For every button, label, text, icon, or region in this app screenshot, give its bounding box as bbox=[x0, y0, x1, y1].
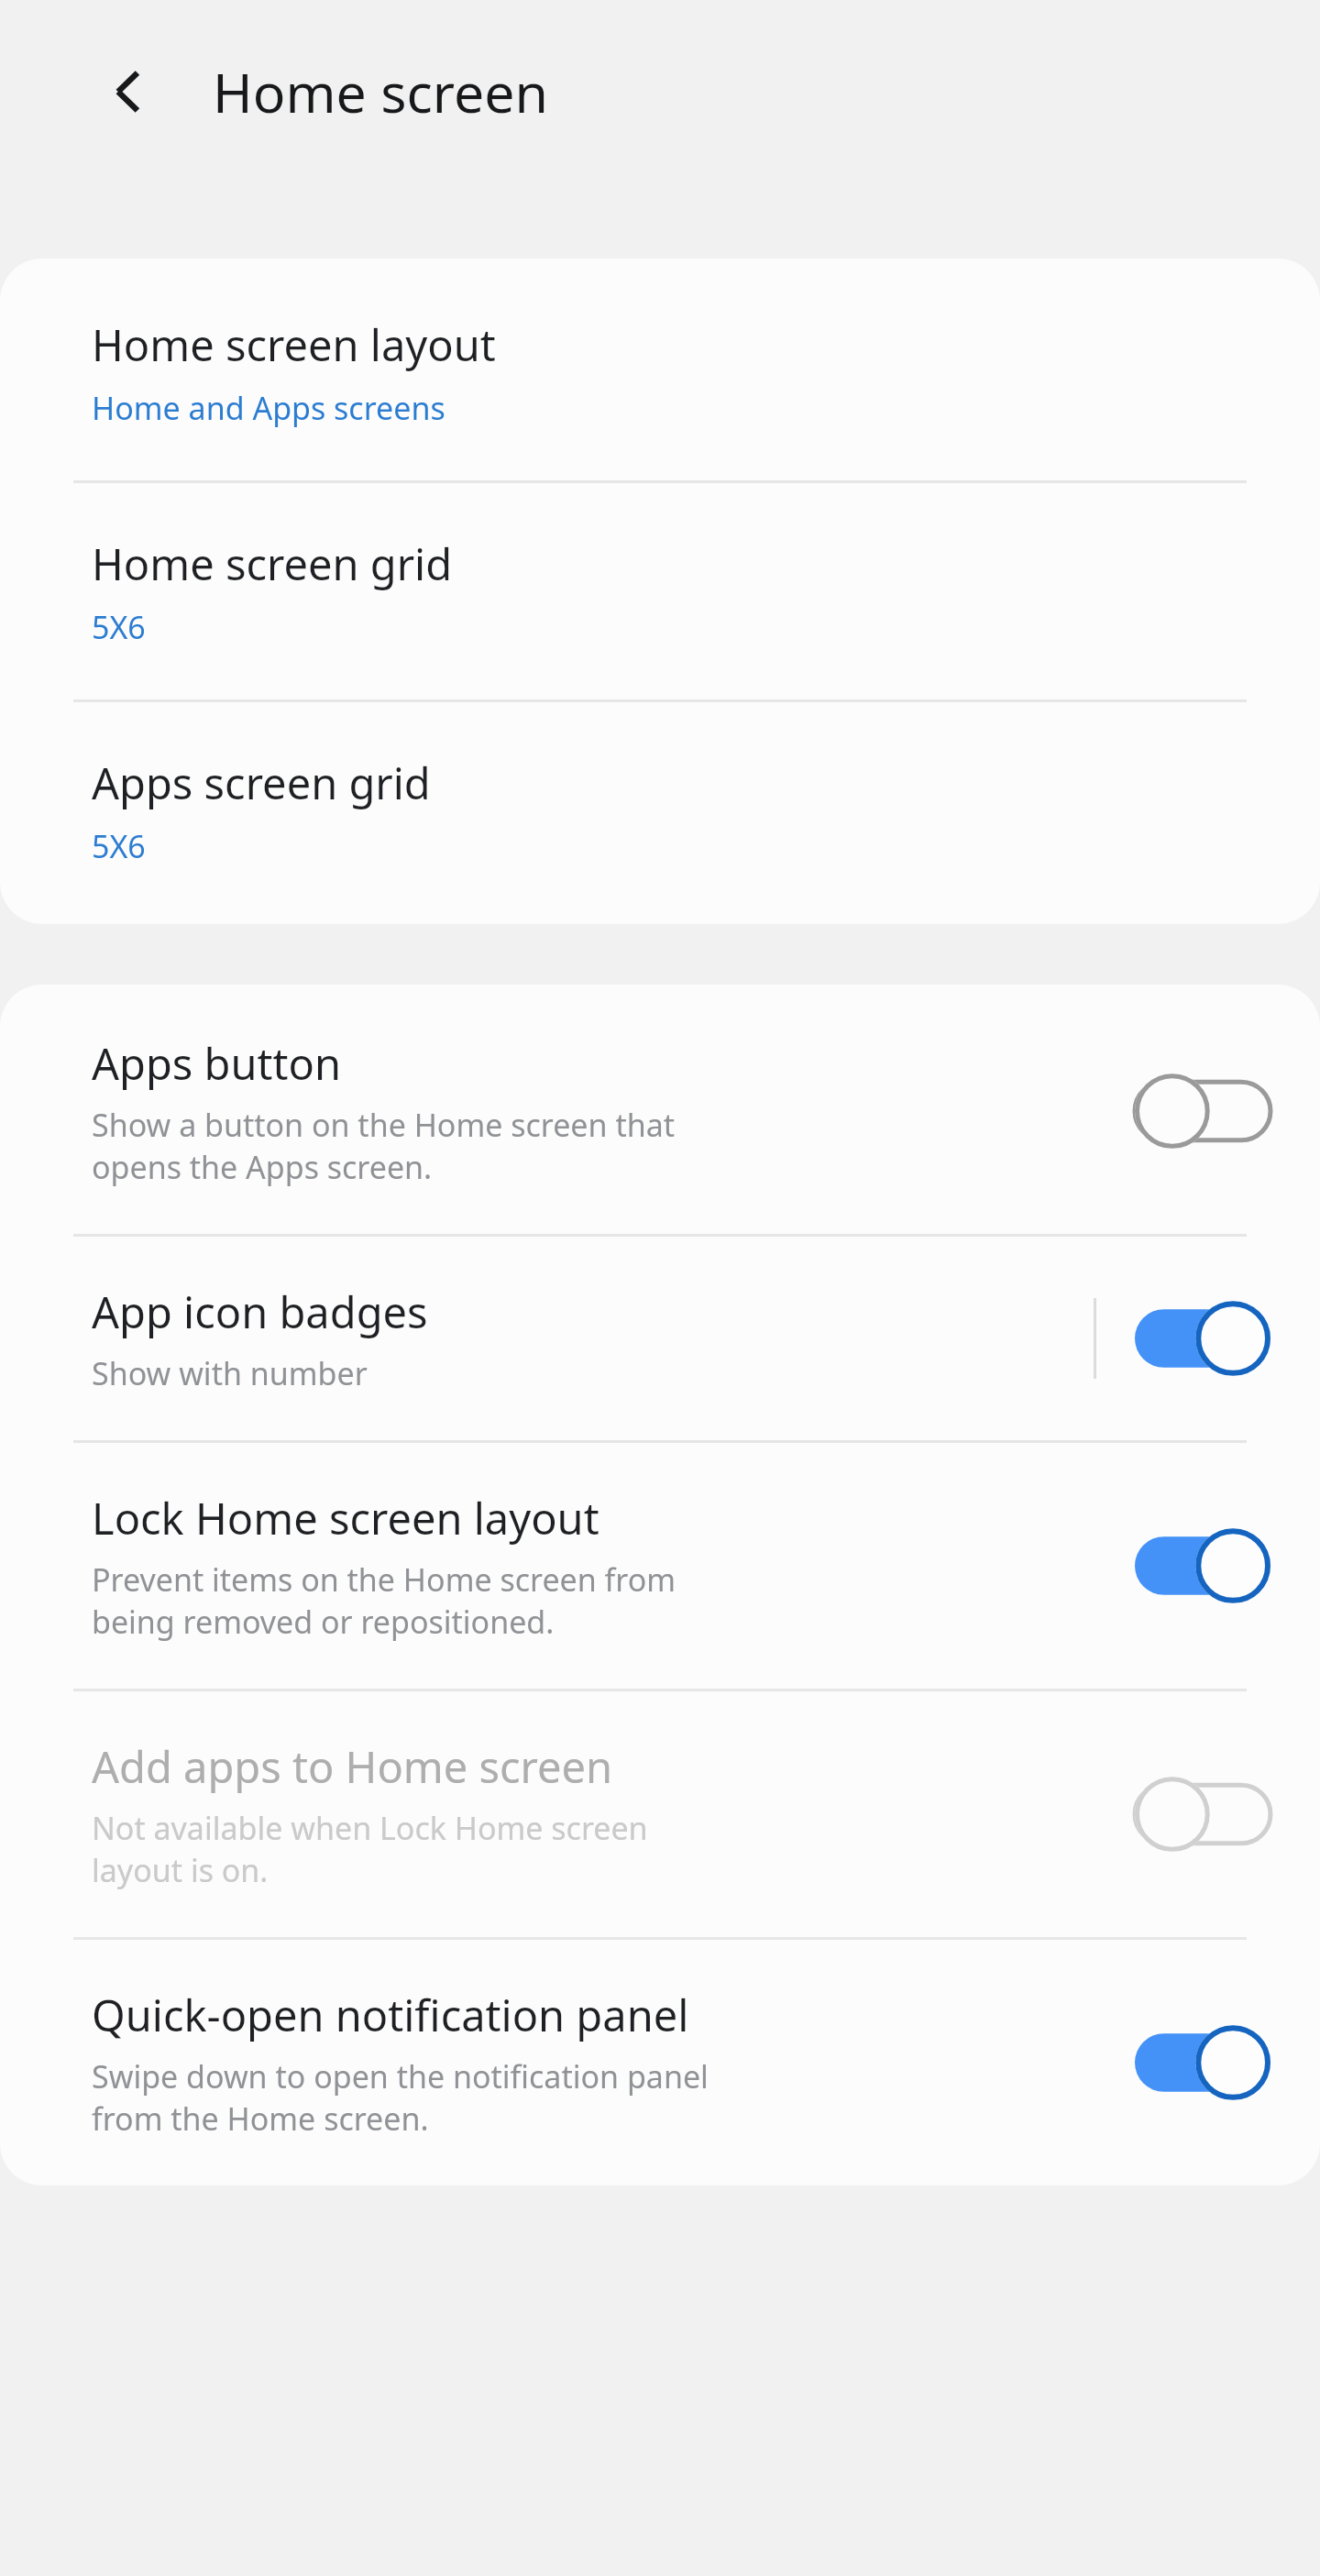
button[interactable]: Toggle on bbox=[1135, 2023, 1270, 2102]
staticText: Home and Apps screens bbox=[92, 387, 445, 429]
staticText: 5X6 bbox=[92, 825, 146, 867]
staticText: Prevent items on the Home screen from be… bbox=[92, 1558, 676, 1643]
button[interactable]: Apps screen grid bbox=[0, 702, 1320, 924]
staticText: Show a button on the Home screen that op… bbox=[92, 1104, 676, 1188]
button[interactable]: Toggle off bbox=[1135, 1072, 1270, 1150]
button[interactable]: Home screen layout bbox=[0, 259, 1320, 480]
staticText: Home screen bbox=[213, 55, 548, 128]
staticText: Apps button bbox=[92, 1034, 341, 1093]
staticText: App icon badges bbox=[92, 1282, 428, 1341]
button: Add apps to Home screen bbox=[0, 1691, 1320, 1937]
button[interactable]: Apps button bbox=[0, 985, 1320, 1234]
staticText: 5X6 bbox=[92, 606, 146, 648]
staticText: Add apps to Home screen bbox=[92, 1737, 613, 1796]
button[interactable]: Toggle on bbox=[1135, 1299, 1270, 1378]
button: Toggle off bbox=[1135, 1775, 1270, 1854]
staticText: Show with number bbox=[92, 1352, 368, 1394]
button[interactable]: Back bbox=[82, 46, 174, 138]
staticText: Home screen grid bbox=[92, 534, 453, 593]
staticText: Not available when Lock Home screen layo… bbox=[92, 1807, 648, 1891]
staticText: Quick-open notification panel bbox=[92, 1986, 689, 2044]
button[interactable]: Lock Home screen layout bbox=[0, 1443, 1320, 1689]
button[interactable]: Home screen grid bbox=[0, 483, 1320, 699]
staticText: Swipe down to open the notification pane… bbox=[92, 2055, 709, 2140]
staticText: Lock Home screen layout bbox=[92, 1489, 599, 1547]
button[interactable]: Toggle on bbox=[1135, 1526, 1270, 1605]
staticText: Home screen layout bbox=[92, 315, 496, 374]
button[interactable]: App icon badges bbox=[0, 1237, 1320, 1440]
button[interactable]: Quick-open notification panel bbox=[0, 1940, 1320, 2185]
staticText: Apps screen grid bbox=[92, 754, 431, 812]
